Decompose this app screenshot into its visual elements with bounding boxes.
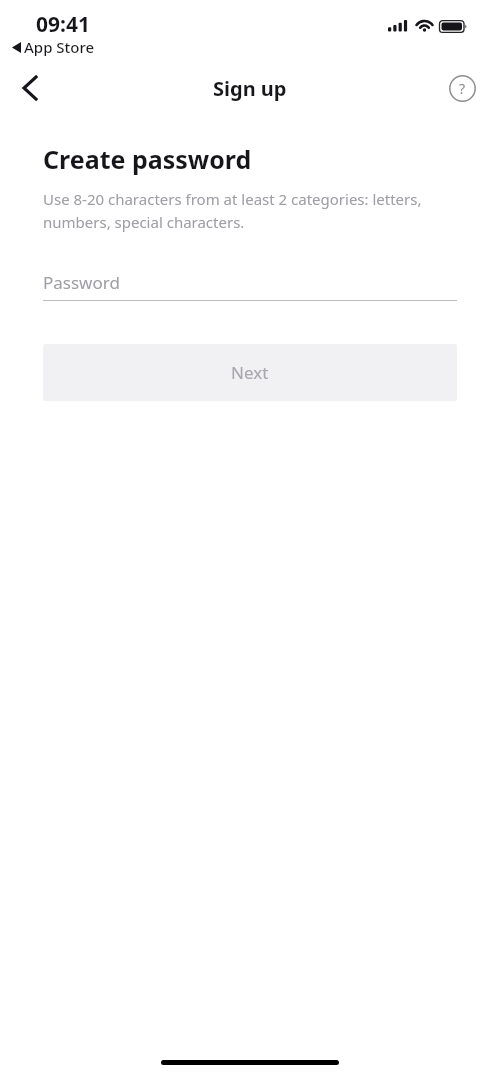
button[interactable]: Back	[6, 64, 54, 112]
staticText: Next	[231, 361, 269, 384]
staticText: Use 8-20 characters from at least 2 cate…	[43, 189, 422, 232]
staticText: App Store	[24, 37, 95, 57]
staticText: Password	[43, 271, 120, 294]
button[interactable]: Password	[43, 265, 457, 300]
staticText: Create password	[43, 142, 252, 176]
staticText: 09:41	[36, 10, 90, 39]
staticText: Sign up	[213, 75, 287, 102]
staticText: ?	[459, 79, 466, 98]
button[interactable]: Help	[438, 64, 486, 112]
button[interactable]: Next	[43, 344, 457, 401]
